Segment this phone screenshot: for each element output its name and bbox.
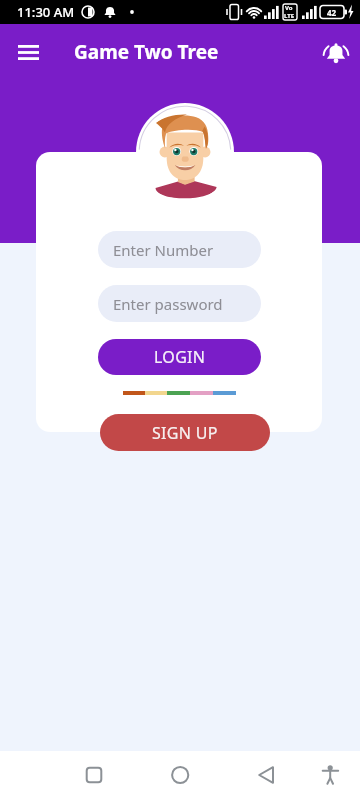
staticText: SIGN UP bbox=[152, 422, 218, 444]
staticText: LOGIN bbox=[154, 346, 206, 368]
button[interactable]: Notifications bbox=[308, 24, 360, 80]
button[interactable]: Enter Number bbox=[98, 231, 261, 268]
button[interactable]: Home bbox=[90, 751, 180, 800]
staticText: Game Two Tree bbox=[74, 39, 219, 65]
button[interactable]: Menu bbox=[0, 24, 56, 80]
staticText: LTE bbox=[284, 12, 295, 20]
button[interactable]: Accessibility bbox=[270, 751, 360, 800]
staticText: Enter Number bbox=[113, 240, 214, 260]
staticText: Enter password bbox=[113, 294, 223, 314]
staticText: 11:30 AM bbox=[17, 3, 75, 21]
button[interactable]: Enter password bbox=[98, 285, 261, 322]
staticText: 42 bbox=[327, 7, 337, 18]
button[interactable]: Recent apps bbox=[0, 751, 90, 800]
button[interactable]: SIGN UP bbox=[100, 414, 270, 451]
button[interactable]: LOGIN bbox=[98, 339, 261, 375]
staticText: Vo bbox=[285, 4, 293, 12]
button[interactable]: Back bbox=[180, 751, 270, 800]
